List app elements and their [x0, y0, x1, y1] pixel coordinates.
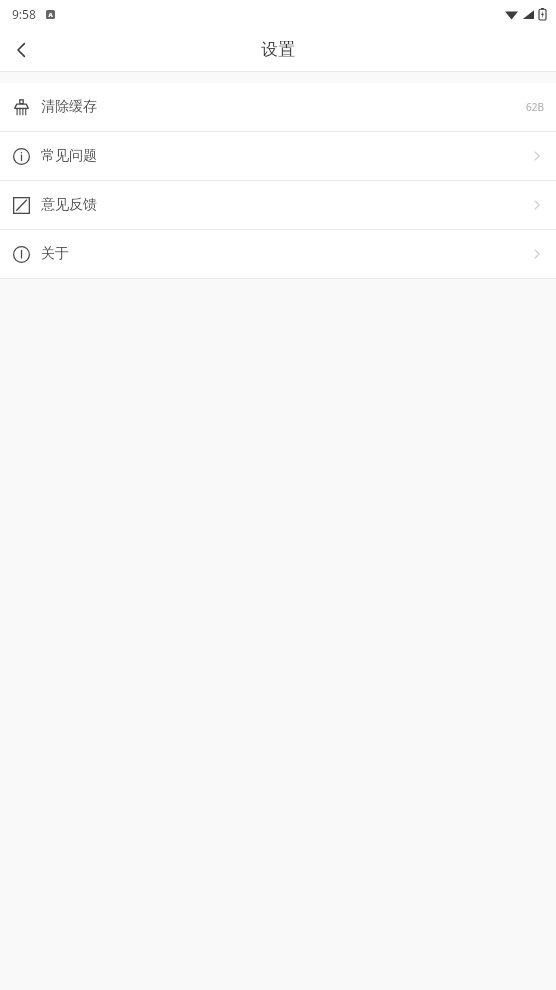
button[interactable]: Back [0, 28, 44, 71]
staticText: 9:58 [12, 6, 36, 22]
button[interactable]: 意见反馈 [0, 181, 556, 229]
button[interactable]: 关于 [0, 230, 556, 278]
staticText: 关于 [41, 245, 69, 263]
staticText: 意见反馈 [41, 196, 97, 214]
staticText: 62B [526, 100, 544, 114]
button[interactable]: 清除缓存 [0, 83, 556, 131]
staticText: 常见问题 [41, 147, 97, 165]
button[interactable]: 常见问题 [0, 132, 556, 180]
staticText: A [48, 11, 53, 19]
staticText: 设置 [261, 39, 295, 60]
staticText: 清除缓存 [41, 98, 97, 116]
